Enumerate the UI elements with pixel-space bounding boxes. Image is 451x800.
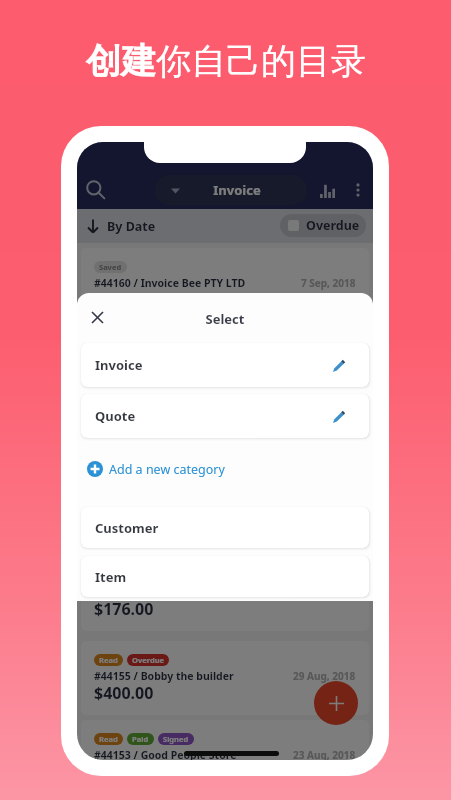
staticText: 30 Aug, 2018 — [293, 585, 356, 599]
staticText: 7 Sep, 2018 — [301, 276, 356, 290]
button[interactable]: Quote — [81, 394, 369, 438]
button[interactable]: Item — [81, 556, 369, 597]
button[interactable]: Read — [81, 557, 369, 631]
staticText: Read — [99, 571, 118, 581]
staticText: Item — [95, 568, 127, 586]
staticText: #44153 / Good People Store — [94, 748, 237, 760]
button[interactable]: Search — [80, 174, 112, 206]
staticText: $176.00 — [94, 598, 154, 620]
staticText: #44159 / Jane Citizen — [94, 356, 203, 370]
button[interactable]: Saved — [81, 248, 369, 322]
button[interactable]: Invoice — [81, 343, 369, 387]
staticText: Read — [99, 422, 118, 432]
button[interactable]: By Date — [86, 209, 156, 243]
button[interactable]: Edit Quote — [328, 405, 350, 427]
staticText: By Date — [107, 218, 156, 235]
staticText: $120.00 — [94, 449, 154, 471]
button[interactable]: Close — [82, 302, 113, 333]
staticText: #44158 / Acme Pty Ltd — [94, 436, 210, 450]
staticText: $176.00 — [94, 289, 154, 311]
button[interactable]: Edit Invoice — [328, 354, 350, 376]
staticText: $980.00 — [94, 369, 154, 391]
button[interactable]: Read — [81, 488, 369, 562]
button[interactable]: Add a new category — [87, 458, 225, 480]
staticText: Invoice — [95, 356, 143, 374]
button[interactable]: Read — [81, 328, 369, 402]
staticText: Overdue — [132, 655, 164, 665]
button[interactable]: Read — [81, 641, 369, 715]
staticText: 29 Aug, 2018 — [293, 669, 356, 683]
staticText: Paid — [132, 734, 149, 744]
staticText: 23 Aug, 2018 — [293, 748, 356, 760]
staticText: Add a new category — [109, 461, 225, 478]
button[interactable]: Read — [81, 408, 369, 482]
staticText: 5 Sep, 2018 — [301, 356, 356, 370]
staticText: Read — [99, 655, 118, 665]
staticText: Read — [99, 734, 118, 744]
staticText: 3 Sep, 2018 — [301, 436, 356, 450]
staticText: #44157 / Hill Top Cafe — [94, 516, 206, 530]
staticText: Overdue — [306, 217, 360, 234]
staticText: #44155 / Bobby the builder — [94, 669, 234, 683]
staticText: Customer — [95, 519, 159, 537]
staticText: Select — [77, 310, 373, 328]
button[interactable]: More options — [344, 176, 372, 204]
button[interactable]: Overdue — [280, 214, 366, 237]
staticText: $64.00 — [94, 529, 145, 551]
staticText: Invoice — [180, 181, 294, 199]
staticText: Signed — [163, 734, 189, 744]
button[interactable]: Read — [81, 720, 369, 760]
staticText: #44156 / Big Store Co — [94, 585, 204, 599]
staticText: #44160 / Invoice Bee PTY LTD — [94, 276, 246, 290]
staticText: 创建 — [86, 39, 156, 83]
staticText: 你自己的目录 — [156, 39, 366, 83]
staticText: Quote — [95, 407, 136, 425]
button[interactable]: Reports — [313, 176, 341, 204]
staticText: Saved — [99, 262, 122, 272]
button[interactable]: Add invoice — [314, 681, 358, 725]
button[interactable]: Customer — [81, 507, 369, 548]
staticText: $400.00 — [94, 682, 154, 704]
button[interactable]: Invoice — [155, 175, 307, 205]
